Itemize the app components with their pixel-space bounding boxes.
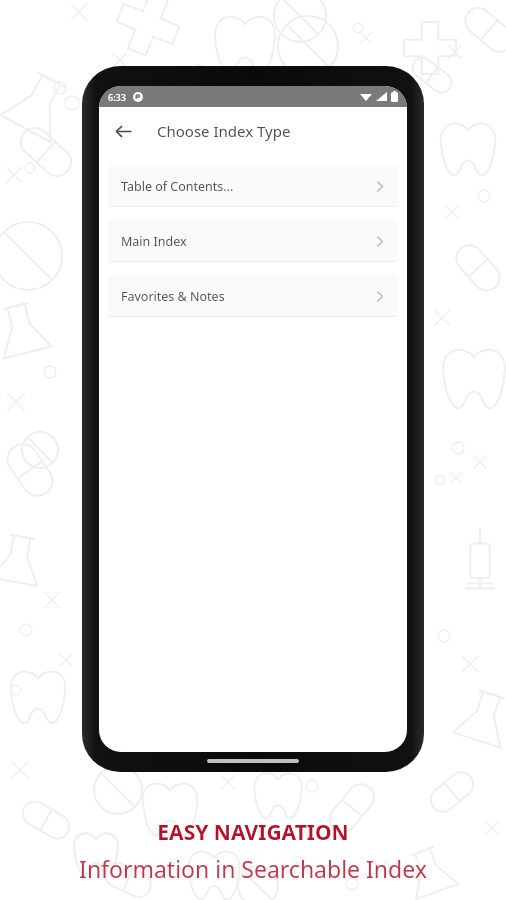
staticText: Information in Searchable Index bbox=[0, 853, 506, 884]
button[interactable]: Favorites & Notes bbox=[108, 275, 398, 317]
staticText: Choose Index Type bbox=[157, 121, 291, 141]
staticText: Favorites & Notes bbox=[121, 288, 225, 305]
button[interactable]: Back bbox=[105, 113, 141, 149]
button[interactable]: Table of Contents... bbox=[108, 165, 398, 207]
button[interactable]: Main Index bbox=[108, 220, 398, 262]
staticText: Main Index bbox=[121, 233, 187, 250]
staticText: 6:33 bbox=[108, 91, 126, 103]
staticText: EASY NAVIGATION bbox=[0, 818, 506, 847]
staticText: Table of Contents... bbox=[121, 178, 234, 195]
